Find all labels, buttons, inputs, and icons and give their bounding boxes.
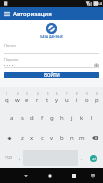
- button[interactable]: 9: [82, 87, 92, 108]
- staticText: БАЗА ДАННЫХ: [40, 35, 63, 39]
- button[interactable]: a: [7, 108, 17, 128]
- button[interactable]: b: [57, 128, 67, 148]
- button[interactable]: Enter: [90, 155, 97, 162]
- staticText: l: [91, 114, 93, 122]
- button[interactable]: h: [57, 108, 67, 128]
- button[interactable]: k: [77, 108, 87, 128]
- button[interactable]: 4: [32, 87, 42, 108]
- button[interactable]: j: [67, 108, 77, 128]
- button[interactable]: 6: [52, 87, 62, 108]
- staticText: .: [81, 155, 83, 161]
- button[interactable]: ,: [16, 148, 23, 168]
- staticText: 5: [47, 92, 49, 96]
- staticText: 0: [96, 92, 98, 96]
- staticText: ,: [19, 155, 21, 161]
- button[interactable]: f: [37, 108, 47, 128]
- staticText: h: [60, 114, 64, 122]
- button[interactable]: m: [77, 128, 87, 148]
- button[interactable]: 5: [42, 87, 52, 108]
- button[interactable]: ?123: [1, 148, 16, 168]
- staticText: b: [60, 134, 64, 142]
- staticText: 4:54: [94, 1, 102, 6]
- button[interactable]: Hide keyboard: [85, 168, 100, 183]
- staticText: 4: [37, 92, 39, 96]
- staticText: p: [95, 96, 99, 104]
- staticText: 3: [26, 92, 28, 96]
- staticText: e: [25, 96, 29, 104]
- button[interactable]: v: [47, 128, 57, 148]
- button[interactable]: g: [47, 108, 57, 128]
- staticText: 9: [86, 92, 88, 96]
- staticText: o: [85, 96, 89, 104]
- button[interactable]: 7: [62, 87, 72, 108]
- staticText: Логин: [4, 43, 16, 48]
- staticText: 1: [6, 92, 8, 96]
- button[interactable]: c: [37, 128, 47, 148]
- staticText: • • • •: [4, 63, 14, 68]
- staticText: w: [15, 96, 20, 104]
- button[interactable]: ВОЙТИ: [4, 72, 99, 78]
- staticText: i: [76, 96, 78, 104]
- button[interactable]: 0: [92, 87, 102, 108]
- staticText: t: [46, 96, 49, 104]
- staticText: Авторизация: [13, 10, 52, 18]
- button[interactable]: 2: [12, 87, 22, 108]
- button[interactable]: Open navigation menu: [0, 7, 13, 20]
- staticText: c: [41, 134, 44, 142]
- staticText: z: [21, 134, 24, 142]
- staticText: j: [71, 114, 73, 122]
- button[interactable]: Back: [18, 168, 33, 183]
- button[interactable]: d: [27, 108, 37, 128]
- staticText: f: [41, 114, 44, 122]
- staticText: a: [10, 114, 14, 122]
- button[interactable]: 8: [72, 87, 82, 108]
- staticText: n: [70, 134, 74, 142]
- staticText: ВОЙТИ: [44, 72, 60, 78]
- staticText: ?123: [5, 156, 12, 160]
- button[interactable]: Shift: [1, 128, 17, 148]
- staticText: g: [50, 114, 54, 122]
- staticText: v: [50, 134, 54, 142]
- staticText: k: [80, 114, 84, 122]
- staticText: r: [36, 96, 39, 104]
- button[interactable]: .: [78, 148, 85, 168]
- staticText: 2: [17, 92, 19, 96]
- button[interactable]: 1: [1, 87, 12, 108]
- button[interactable]: z: [17, 128, 27, 148]
- staticText: s: [21, 114, 24, 122]
- button[interactable]: n: [67, 128, 77, 148]
- staticText: x: [30, 134, 34, 142]
- button[interactable]: Show password: [93, 62, 99, 68]
- button[interactable]: Recent apps: [66, 168, 81, 183]
- button[interactable]: l: [87, 108, 97, 128]
- staticText: 6: [56, 92, 58, 96]
- button[interactable]: 3: [22, 87, 32, 108]
- staticText: m: [79, 134, 85, 142]
- button[interactable]: s: [17, 108, 27, 128]
- button[interactable]: Backspace: [87, 128, 102, 148]
- staticText: 8: [76, 92, 78, 96]
- button[interactable]: x: [27, 128, 37, 148]
- staticText: y: [55, 96, 59, 104]
- staticText: Пароль: [4, 57, 19, 62]
- staticText: q: [5, 96, 9, 104]
- staticText: u: [65, 96, 69, 104]
- staticText: d: [30, 114, 34, 122]
- staticText: 7: [66, 92, 68, 96]
- button[interactable]: Home: [42, 168, 57, 183]
